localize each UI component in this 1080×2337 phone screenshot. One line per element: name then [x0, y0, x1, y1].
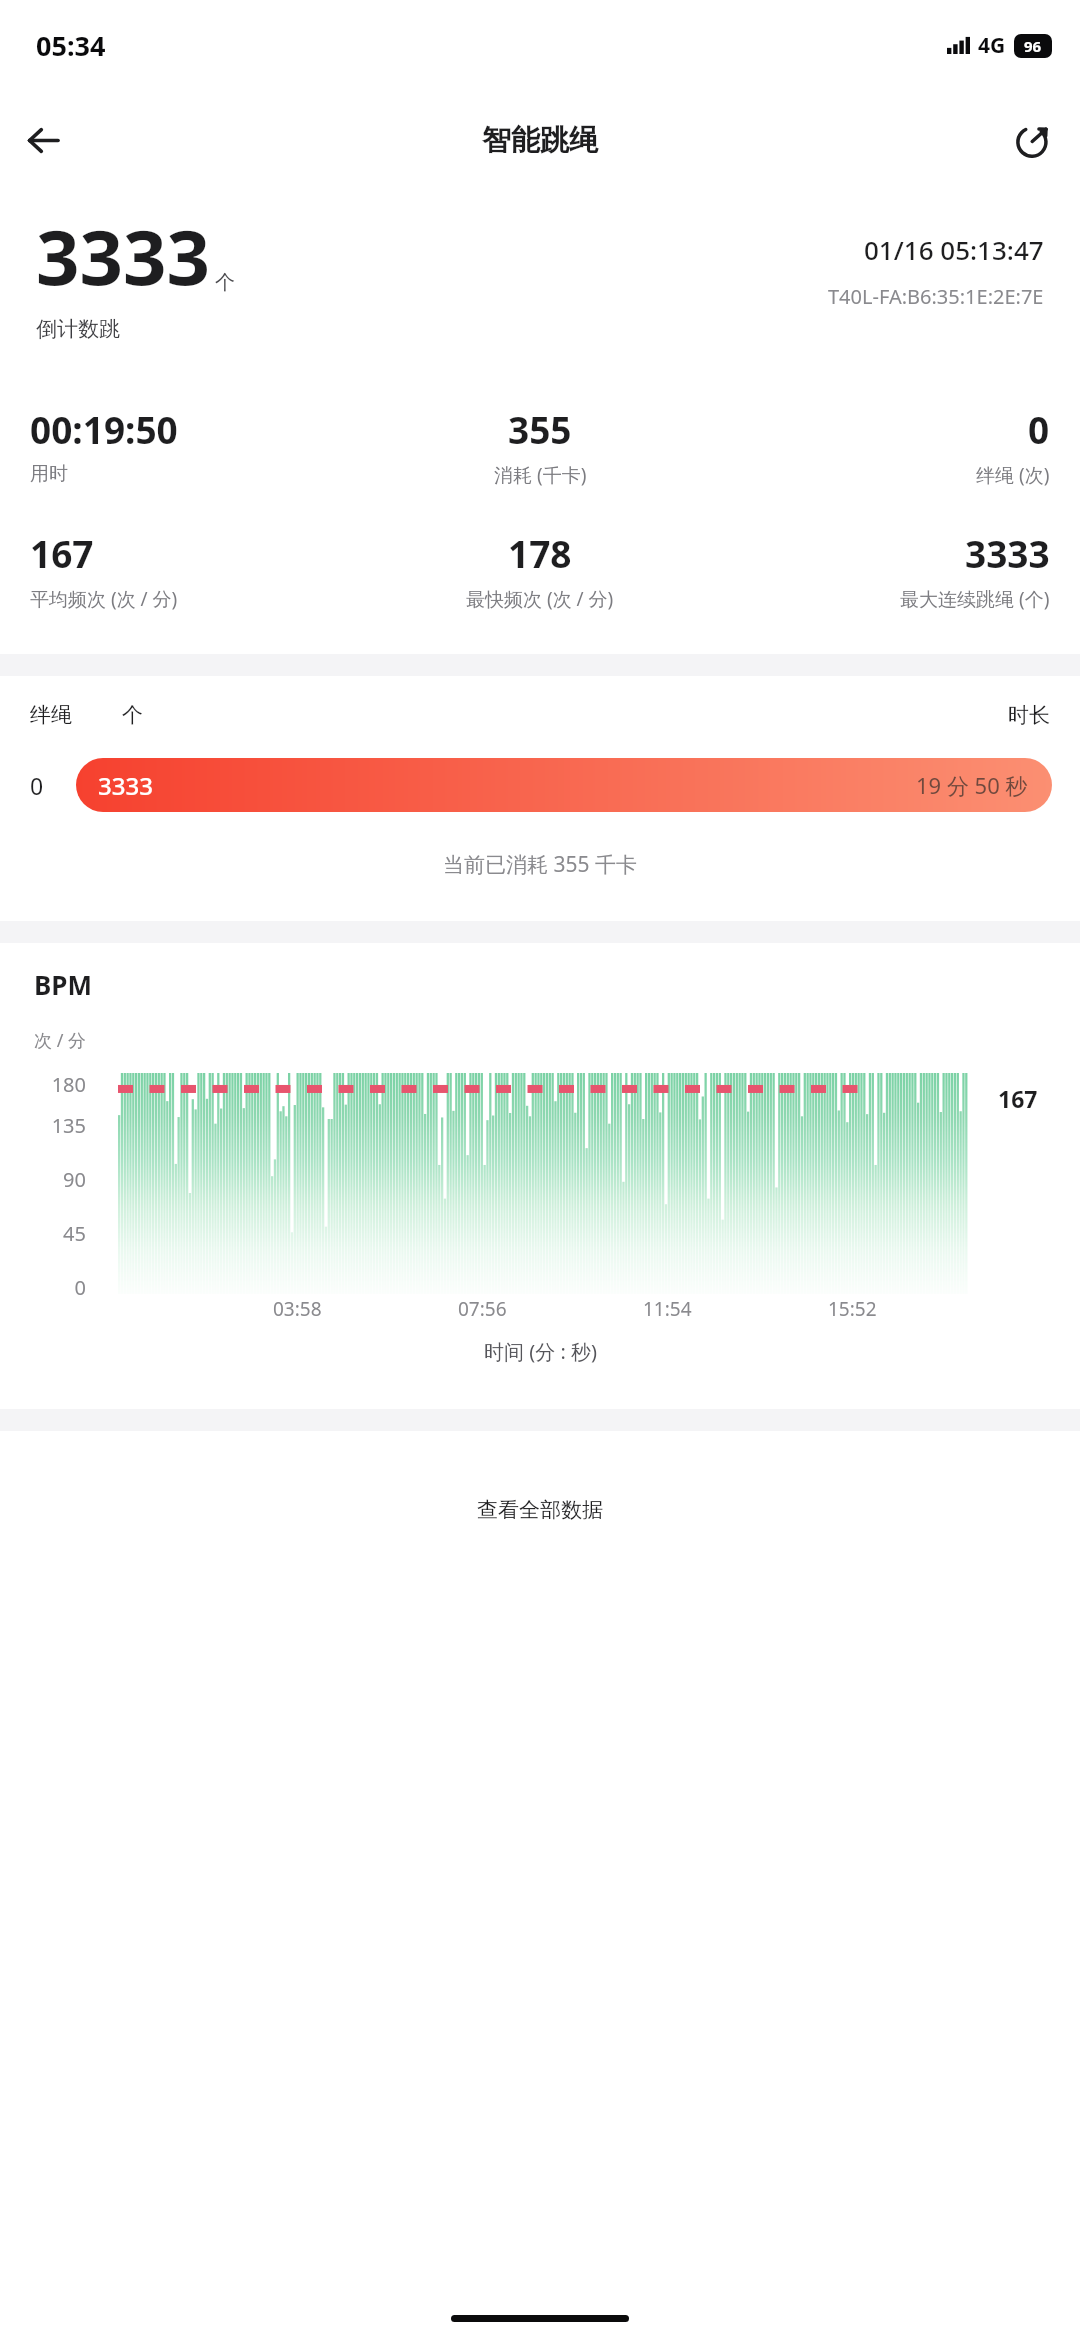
- button[interactable]: 查看全部数据: [0, 1483, 1080, 1537]
- staticText: 时长: [1008, 702, 1050, 728]
- staticText: 智能跳绳: [482, 122, 598, 159]
- staticText: 查看全部数据: [477, 1497, 603, 1523]
- staticText: 05:34: [36, 27, 106, 64]
- staticText: 15:52: [828, 1296, 877, 1322]
- staticText: 167: [998, 1083, 1038, 1114]
- staticText: 0: [40, 1274, 86, 1296]
- staticText: 0: [30, 770, 44, 801]
- staticText: 用时: [30, 462, 68, 486]
- staticText: 167: [30, 528, 94, 578]
- staticText: 绊绳: [30, 702, 72, 728]
- staticText: 4G: [978, 31, 1006, 60]
- staticText: 时间 (分 : 秒): [484, 1338, 597, 1365]
- button[interactable]: Back: [12, 109, 74, 171]
- staticText: 00:19:50: [30, 404, 178, 454]
- staticText: 90: [40, 1166, 86, 1193]
- staticText: T40L-FA:B6:35:1E:2E:7E: [828, 283, 1044, 310]
- staticText: 3333: [98, 769, 153, 802]
- staticText: 3333: [36, 204, 210, 308]
- staticText: 178: [508, 528, 572, 578]
- staticText: 最大连续跳绳 (个): [900, 586, 1050, 612]
- staticText: BPM: [34, 967, 92, 1002]
- button[interactable]: 3333: [76, 758, 1052, 812]
- staticText: 平均频次 (次 / 分): [30, 586, 178, 612]
- staticText: 个: [215, 270, 235, 295]
- staticText: 07:56: [458, 1296, 507, 1322]
- staticText: 03:58: [273, 1296, 322, 1322]
- staticText: 0: [1028, 404, 1050, 454]
- staticText: 19 分 50 秒: [916, 770, 1028, 800]
- staticText: 最快频次 (次 / 分): [466, 586, 614, 612]
- staticText: 96: [1024, 36, 1042, 56]
- staticText: 45: [40, 1220, 86, 1247]
- staticText: 个: [122, 702, 143, 728]
- staticText: 次 / 分: [34, 1028, 87, 1053]
- staticText: 消耗 (千卡): [494, 462, 587, 488]
- staticText: 3333: [965, 528, 1050, 578]
- staticText: 135: [40, 1112, 86, 1139]
- staticText: 355: [508, 404, 572, 454]
- staticText: 01/16 05:13:47: [864, 232, 1044, 267]
- staticText: 11:54: [643, 1296, 692, 1322]
- staticText: 绊绳 (次): [976, 462, 1050, 488]
- staticText: 当前已消耗 355 千卡: [443, 850, 637, 879]
- button[interactable]: Share: [1002, 109, 1064, 171]
- staticText: 180: [40, 1071, 86, 1098]
- staticText: 倒计数跳: [36, 316, 120, 342]
